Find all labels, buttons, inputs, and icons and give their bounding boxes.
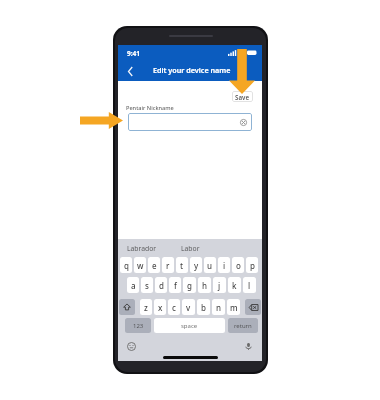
- staticText: y: [194, 260, 199, 271]
- staticText: Edit your device name: [153, 65, 231, 75]
- staticText: Pentair Nickname: [126, 104, 174, 112]
- button[interactable]: d: [155, 277, 167, 293]
- button[interactable]: j: [213, 277, 226, 293]
- button[interactable]: Labrador: [118, 239, 166, 257]
- button[interactable]: b: [197, 299, 210, 315]
- staticText: q: [124, 260, 129, 271]
- button[interactable]: Clear text: [128, 113, 252, 131]
- staticText: b: [201, 302, 206, 313]
- button[interactable]: g: [183, 277, 196, 293]
- button[interactable]: r: [162, 257, 174, 273]
- button[interactable]: e: [148, 257, 160, 273]
- staticText: t: [180, 260, 184, 271]
- button[interactable]: Dictation: [244, 342, 253, 351]
- button[interactable]: u: [204, 257, 216, 273]
- button[interactable]: i: [218, 257, 230, 273]
- staticText: e: [152, 260, 157, 271]
- staticText: i: [223, 260, 226, 271]
- button[interactable]: space: [154, 318, 225, 333]
- button[interactable]: q: [120, 257, 132, 273]
- button[interactable]: k: [228, 277, 241, 293]
- staticText: d: [159, 280, 164, 291]
- staticText: l: [248, 280, 251, 291]
- button[interactable]: Labor: [166, 239, 214, 257]
- button[interactable]: 123: [125, 318, 151, 333]
- button[interactable]: return: [228, 318, 258, 333]
- button[interactable]: Back: [122, 63, 138, 79]
- button[interactable]: w: [134, 257, 146, 273]
- button[interactable]: m: [227, 299, 240, 315]
- other: Clear text: [240, 119, 247, 126]
- staticText: w: [137, 260, 144, 271]
- staticText: n: [216, 302, 222, 313]
- staticText: return: [234, 322, 252, 330]
- button[interactable]: s: [141, 277, 153, 293]
- button[interactable]: a: [127, 277, 139, 293]
- staticText: s: [145, 280, 149, 291]
- button[interactable]: t: [176, 257, 188, 273]
- staticText: Save: [235, 93, 250, 101]
- staticText: a: [131, 280, 136, 291]
- staticText: r: [166, 260, 170, 271]
- button[interactable]: p: [246, 257, 258, 273]
- button[interactable]: x: [154, 299, 166, 315]
- button[interactable]: Save: [232, 91, 253, 102]
- staticText: z: [144, 302, 148, 313]
- button[interactable]: h: [198, 277, 211, 293]
- staticText: 9:41: [127, 49, 140, 58]
- button[interactable]: Shift: [119, 299, 135, 315]
- button[interactable]: l: [243, 277, 256, 293]
- button[interactable]: v: [182, 299, 195, 315]
- staticText: m: [230, 302, 238, 313]
- staticText: p: [250, 260, 255, 271]
- button[interactable]: Emoji: [127, 342, 136, 351]
- staticText: v: [186, 302, 191, 313]
- button[interactable]: f: [169, 277, 181, 293]
- button[interactable]: o: [232, 257, 244, 273]
- staticText: x: [158, 302, 163, 313]
- staticText: Labor: [181, 244, 200, 253]
- button[interactable]: n: [212, 299, 225, 315]
- button[interactable]: z: [140, 299, 152, 315]
- staticText: o: [236, 260, 241, 271]
- button[interactable]: y: [190, 257, 202, 273]
- staticText: space: [181, 322, 198, 330]
- staticText: Labrador: [127, 244, 157, 253]
- staticText: 123: [133, 322, 144, 330]
- staticText: k: [232, 280, 237, 291]
- staticText: u: [207, 260, 213, 271]
- staticText: f: [174, 280, 177, 291]
- staticText: h: [202, 280, 208, 291]
- button[interactable]: c: [168, 299, 180, 315]
- staticText: c: [172, 302, 176, 313]
- staticText: j: [218, 280, 221, 291]
- button[interactable]: Delete: [245, 299, 261, 315]
- staticText: g: [187, 280, 192, 291]
